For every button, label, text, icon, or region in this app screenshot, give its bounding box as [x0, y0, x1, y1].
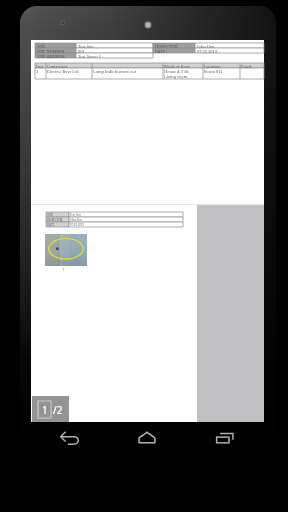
- staticText: John Doe: [197, 44, 215, 48]
- staticText: Fixed: [241, 64, 252, 68]
- button[interactable]: Recent apps: [186, 422, 264, 453]
- staticText: DATE: [47, 223, 55, 227]
- staticText: 1: [36, 69, 39, 74]
- staticText: Test Site: [78, 44, 94, 48]
- staticText: Img: [36, 64, 44, 68]
- staticText: Contractor: [47, 64, 68, 68]
- staticText: John Doe: [70, 218, 83, 222]
- staticText: 1: [42, 403, 48, 417]
- staticText: INSPECTOR: [155, 44, 178, 48]
- staticText: Block or floor: [164, 64, 190, 68]
- staticText: SITE: [37, 44, 46, 48]
- button[interactable]: Back: [31, 422, 108, 453]
- staticText: Test Site: [70, 213, 81, 217]
- staticText: 07.02.2013: [70, 223, 84, 227]
- staticText: 07.02.2013: [197, 49, 217, 53]
- button[interactable]: Home: [108, 422, 186, 453]
- staticText: SITE ADDRESS: [37, 54, 65, 58]
- staticText: /2: [53, 403, 63, 417]
- staticText: House A 3 flr., Living room: [164, 69, 203, 79]
- staticText: DATE: [155, 49, 166, 53]
- staticText: INSPECTOR: [47, 218, 63, 222]
- staticText: SITE NUMBER: [37, 49, 65, 53]
- staticText: Test Street 1: [78, 54, 102, 58]
- staticText: 001: [78, 49, 85, 53]
- staticText: Location: [204, 64, 221, 68]
- staticText: 1: [63, 268, 65, 272]
- staticText: SITE: [47, 213, 54, 217]
- staticText: Electric Boys Ltd: [47, 69, 79, 74]
- button[interactable]: 1: [32, 396, 69, 422]
- staticText: Lamp bulb burned out: [93, 69, 137, 74]
- staticText: Room 011: [204, 69, 223, 74]
